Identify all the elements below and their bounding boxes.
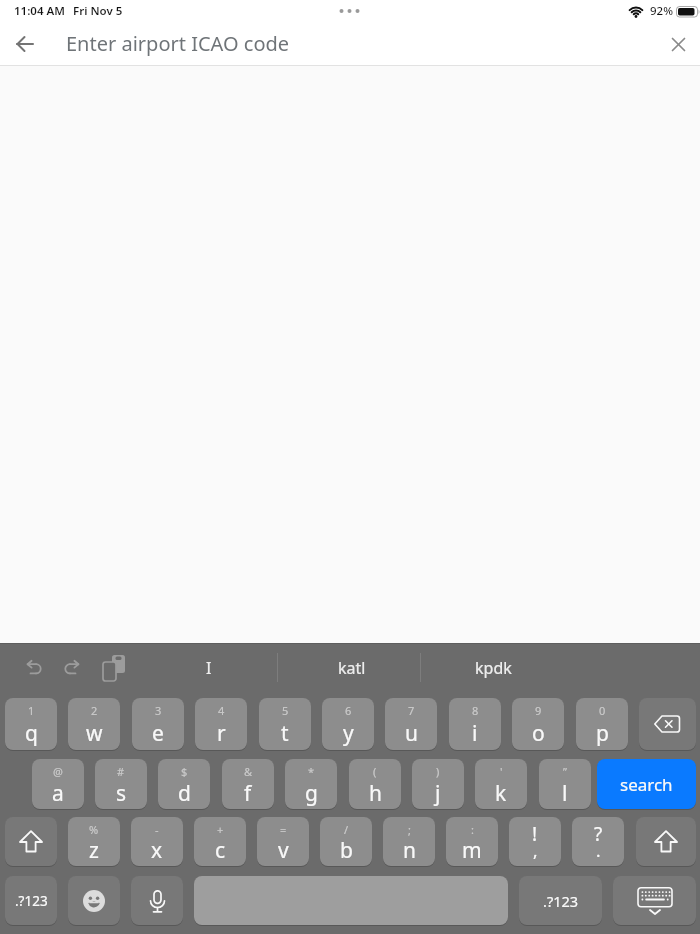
- button[interactable]: [58, 653, 88, 683]
- staticText: ': [500, 764, 503, 779]
- button[interactable]: 8: [449, 698, 501, 750]
- button[interactable]: 7: [385, 698, 437, 750]
- button[interactable]: [662, 28, 694, 60]
- staticText: q: [25, 719, 38, 748]
- button[interactable]: [636, 817, 696, 866]
- button[interactable]: @: [32, 759, 84, 809]
- staticText: n: [403, 836, 416, 865]
- staticText: .?123: [543, 891, 579, 911]
- button[interactable]: ”: [539, 759, 591, 809]
- staticText: 1: [28, 703, 35, 718]
- button[interactable]: 0: [576, 698, 628, 750]
- staticText: v: [278, 836, 289, 865]
- button[interactable]: ): [412, 759, 464, 809]
- staticText: $: [181, 764, 188, 779]
- button[interactable]: [18, 653, 48, 683]
- staticText: .?123: [15, 892, 48, 910]
- staticText: 7: [408, 703, 415, 718]
- staticText: l: [562, 779, 568, 808]
- button[interactable]: [613, 876, 696, 925]
- staticText: b: [340, 836, 353, 865]
- staticText: j: [435, 779, 441, 808]
- button[interactable]: .?123: [519, 876, 602, 925]
- staticText: o: [532, 719, 545, 748]
- button[interactable]: [99, 652, 129, 684]
- staticText: k: [495, 779, 507, 808]
- staticText: &: [244, 764, 253, 779]
- staticText: -: [155, 822, 159, 837]
- staticText: a: [52, 779, 64, 808]
- staticText: ,: [533, 839, 538, 862]
- button[interactable]: !: [509, 817, 561, 866]
- staticText: search: [620, 773, 673, 796]
- staticText: y: [343, 719, 354, 748]
- button[interactable]: #: [95, 759, 147, 809]
- staticText: Fri Nov 5: [73, 3, 123, 19]
- button[interactable]: +: [194, 817, 246, 866]
- staticText: ”: [563, 764, 567, 779]
- button[interactable]: 9: [512, 698, 564, 750]
- staticText: 6: [345, 703, 352, 718]
- button[interactable]: %: [68, 817, 120, 866]
- button[interactable]: kpdk: [448, 652, 538, 683]
- staticText: d: [178, 779, 191, 808]
- button[interactable]: (: [349, 759, 401, 809]
- button[interactable]: [5, 817, 57, 866]
- staticText: #: [117, 764, 125, 779]
- button[interactable]: 3: [132, 698, 184, 750]
- staticText: 5: [282, 703, 289, 718]
- staticText: t: [281, 719, 289, 748]
- staticText: w: [86, 719, 103, 748]
- button[interactable]: $: [158, 759, 210, 809]
- staticText: *: [308, 764, 315, 779]
- staticText: katl: [338, 657, 366, 679]
- staticText: I: [206, 657, 212, 679]
- staticText: x: [151, 836, 163, 865]
- button[interactable]: :: [446, 817, 498, 866]
- button[interactable]: [639, 698, 696, 750]
- button[interactable]: 5: [259, 698, 311, 750]
- button[interactable]: *: [285, 759, 337, 809]
- button[interactable]: /: [320, 817, 372, 866]
- staticText: i: [472, 719, 478, 748]
- staticText: 3: [155, 703, 162, 718]
- staticText: u: [405, 719, 418, 748]
- button[interactable]: [7, 26, 43, 62]
- button[interactable]: 4: [195, 698, 247, 750]
- staticText: c: [215, 836, 226, 865]
- staticText: =: [280, 822, 287, 837]
- staticText: ?: [594, 821, 603, 847]
- button[interactable]: 2: [68, 698, 120, 750]
- staticText: z: [89, 836, 99, 865]
- button[interactable]: =: [257, 817, 309, 866]
- staticText: /: [344, 822, 349, 837]
- staticText: 8: [472, 703, 479, 718]
- button[interactable]: katl: [307, 652, 397, 683]
- button[interactable]: [194, 876, 508, 925]
- button[interactable]: -: [131, 817, 183, 866]
- staticText: f: [244, 779, 252, 808]
- button[interactable]: .?123: [5, 876, 57, 925]
- button[interactable]: &: [222, 759, 274, 809]
- button[interactable]: 1: [5, 698, 57, 750]
- staticText: @: [53, 764, 63, 779]
- button[interactable]: ?: [572, 817, 624, 866]
- button[interactable]: [131, 876, 183, 925]
- staticText: :: [471, 822, 474, 837]
- button[interactable]: ': [475, 759, 527, 809]
- staticText: g: [305, 779, 318, 808]
- button[interactable]: search: [597, 759, 696, 809]
- staticText: 2: [91, 703, 98, 718]
- button[interactable]: [68, 876, 120, 925]
- staticText: r: [217, 719, 226, 748]
- staticText: s: [116, 779, 127, 808]
- button[interactable]: I: [164, 652, 254, 683]
- staticText: 92%: [650, 3, 673, 19]
- staticText: ): [436, 764, 440, 779]
- staticText: m: [462, 836, 482, 865]
- staticText: +: [217, 822, 224, 837]
- staticText: %: [89, 822, 99, 837]
- button[interactable]: ;: [383, 817, 435, 866]
- button[interactable]: 6: [322, 698, 374, 750]
- staticText: (: [373, 764, 377, 779]
